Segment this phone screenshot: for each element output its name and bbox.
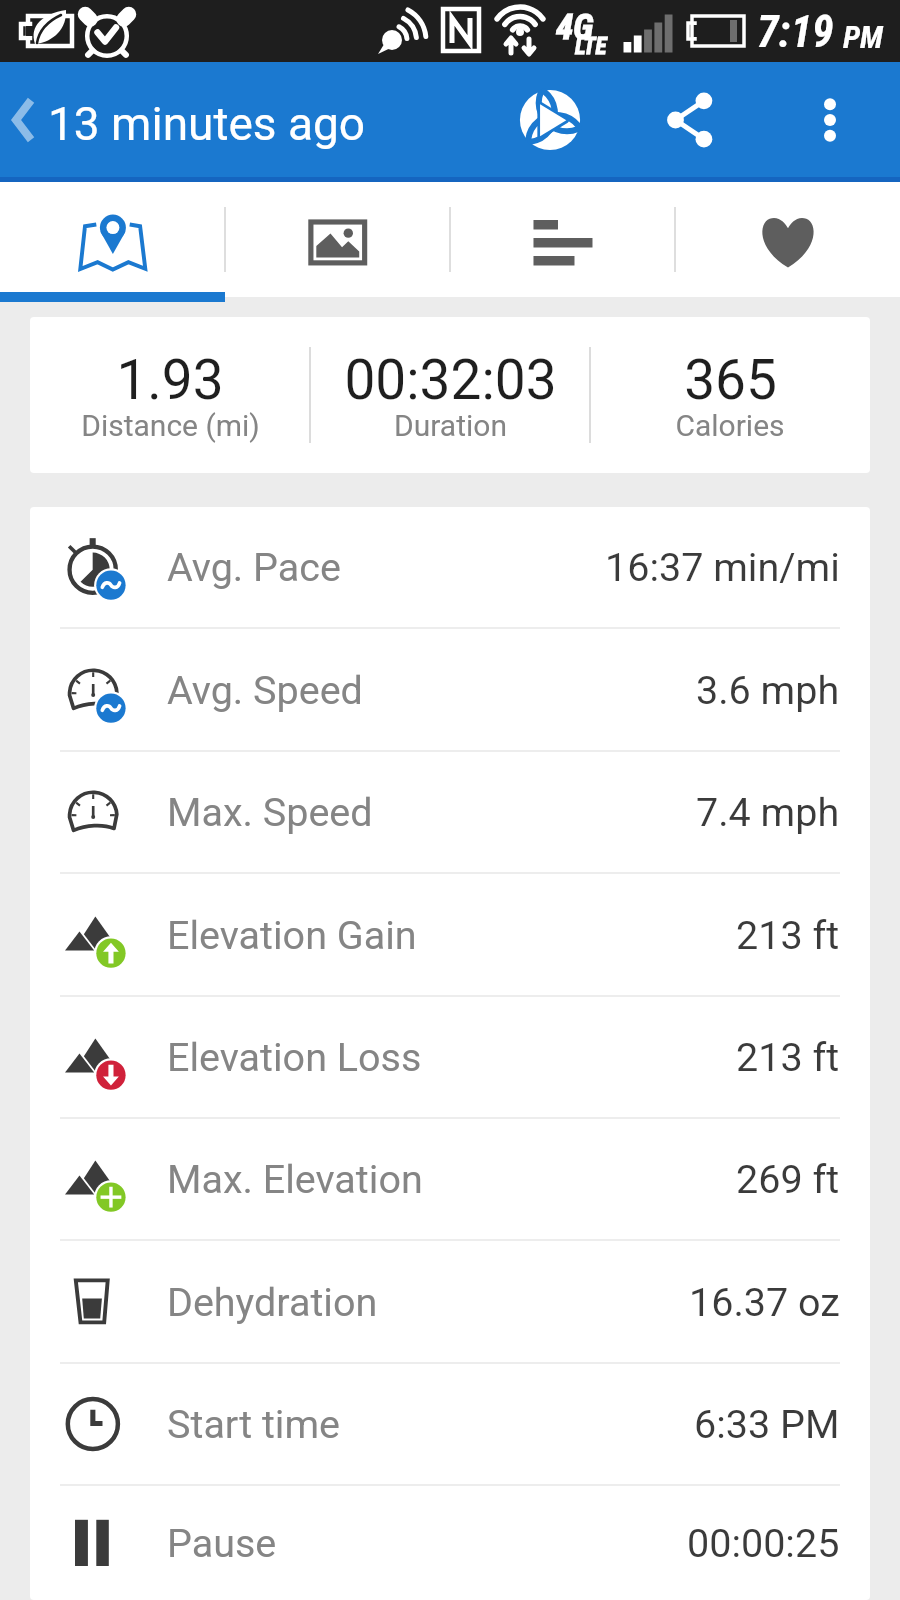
staticText: PM: [843, 19, 883, 55]
staticText: 7.4 mph: [696, 789, 840, 835]
button[interactable]: Max. Speed: [30, 752, 870, 872]
button[interactable]: Map: [0, 182, 225, 297]
button[interactable]: 13 minutes ago: [0, 62, 378, 177]
button[interactable]: Start time: [30, 1364, 870, 1484]
button[interactable]: Elevation Gain: [30, 874, 870, 995]
button[interactable]: Elevation Loss: [30, 997, 870, 1117]
button[interactable]: Photos: [225, 182, 450, 297]
staticText: Start time: [167, 1401, 341, 1447]
button[interactable]: Splits: [450, 182, 675, 297]
button[interactable]: Avg. Speed: [30, 629, 870, 750]
staticText: Calories: [675, 408, 785, 443]
button[interactable]: Max. Elevation: [30, 1119, 870, 1239]
staticText: 00:32:03: [344, 348, 557, 412]
button[interactable]: Heart rate: [675, 182, 900, 297]
staticText: 00:00:25: [687, 1520, 840, 1566]
staticText: 13 minutes ago: [48, 97, 366, 151]
staticText: Elevation Loss: [167, 1034, 422, 1080]
staticText: 6:33 PM: [694, 1401, 840, 1447]
button[interactable]: Avg. Pace: [30, 507, 870, 627]
staticText: Pause: [167, 1520, 277, 1566]
staticText: 1.93: [116, 348, 224, 412]
button[interactable]: Pause: [30, 1486, 870, 1600]
staticText: 4G: [556, 7, 594, 48]
staticText: Avg. Speed: [167, 667, 363, 713]
staticText: Elevation Gain: [167, 912, 417, 958]
button[interactable]: Share: [620, 62, 760, 177]
staticText: 213 ft: [736, 1034, 840, 1080]
staticText: 213 ft: [736, 912, 840, 958]
staticText: 3.6 mph: [696, 667, 840, 713]
staticText: Avg. Pace: [167, 544, 341, 590]
staticText: Max. Elevation: [167, 1156, 423, 1202]
staticText: Distance (mi): [81, 408, 260, 443]
staticText: 365: [684, 348, 777, 412]
staticText: Max. Speed: [167, 789, 373, 835]
button[interactable]: Story: [480, 62, 620, 177]
staticText: Duration: [394, 408, 507, 443]
staticText: 7:19: [757, 6, 834, 58]
staticText: 16:37 min/mi: [605, 544, 840, 590]
staticText: 269 ft: [736, 1156, 840, 1202]
staticText: LTE: [575, 33, 607, 60]
staticText: Dehydration: [167, 1279, 378, 1325]
staticText: 16.37 oz: [689, 1279, 840, 1325]
button[interactable]: Dehydration: [30, 1241, 870, 1362]
button[interactable]: More options: [760, 62, 900, 177]
